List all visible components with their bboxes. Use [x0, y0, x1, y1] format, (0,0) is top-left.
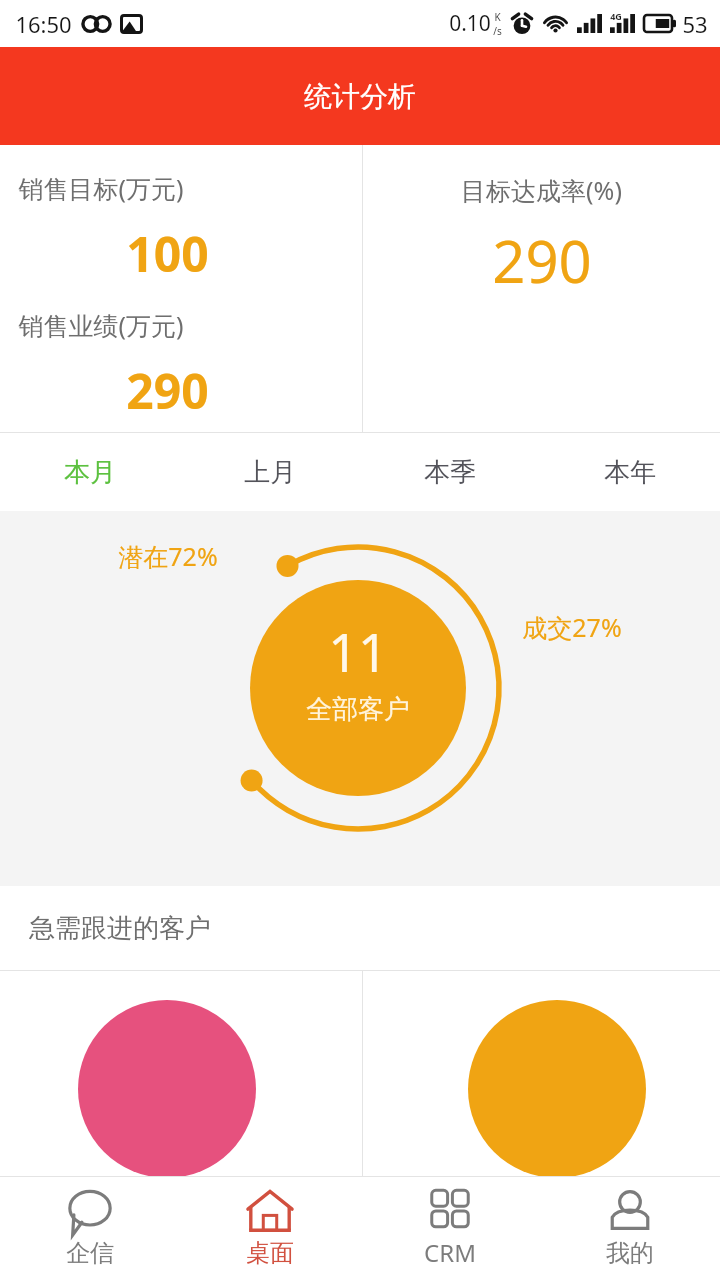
button[interactable]: 本季: [360, 433, 540, 511]
staticText: 290: [126, 358, 209, 423]
staticText: 100: [126, 221, 209, 286]
staticText: 53: [682, 9, 708, 39]
button[interactable]: [0, 971, 362, 1176]
button[interactable]: 企信: [0, 1176, 180, 1280]
staticText: 11: [328, 616, 388, 687]
staticText: 目标达成率(%): [461, 173, 622, 207]
staticText: 上月: [244, 456, 296, 489]
button[interactable]: CRM: [360, 1176, 540, 1280]
button[interactable]: 桌面: [180, 1176, 360, 1280]
button[interactable]: 本月: [0, 433, 180, 511]
staticText: /s: [493, 24, 502, 38]
staticText: 全部客户: [306, 693, 410, 726]
staticText: 本月: [64, 456, 116, 489]
staticText: 我的: [606, 1238, 654, 1268]
staticText: 本年: [604, 456, 656, 489]
staticText: 本季: [424, 456, 476, 489]
staticText: 统计分析: [304, 79, 416, 114]
staticText: 潜在72%: [118, 539, 218, 573]
button[interactable]: [363, 971, 720, 1176]
staticText: K: [494, 10, 501, 24]
staticText: CRM: [424, 1236, 476, 1269]
staticText: 成交27%: [522, 610, 622, 644]
button[interactable]: 上月: [180, 433, 360, 511]
staticText: 16:50: [15, 9, 72, 39]
button[interactable]: 本年: [540, 433, 720, 511]
staticText: 急需跟进的客户: [29, 912, 211, 945]
staticText: 4G: [610, 10, 622, 22]
staticText: 0.10: [449, 9, 491, 38]
button[interactable]: 我的: [540, 1176, 720, 1280]
staticText: 企信: [66, 1238, 114, 1268]
staticText: 桌面: [246, 1238, 294, 1268]
staticText: 销售业绩(万元): [18, 308, 184, 342]
staticText: 销售目标(万元): [18, 171, 184, 205]
staticText: 290: [492, 221, 592, 300]
